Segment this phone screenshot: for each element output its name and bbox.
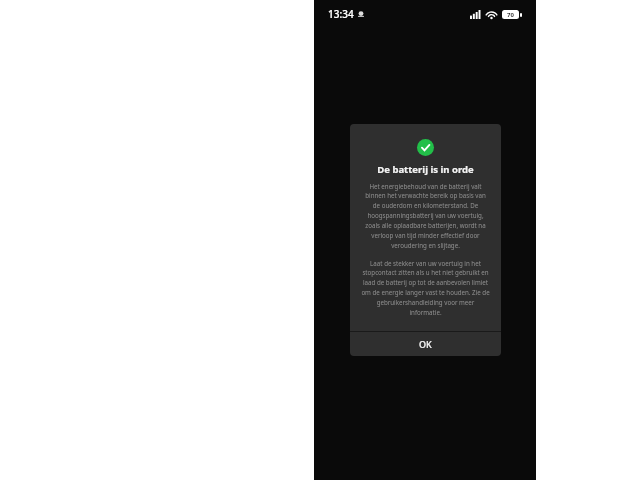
other: Battery healthy	[417, 139, 434, 156]
staticText: 70	[507, 11, 514, 19]
button[interactable]: OK	[350, 332, 501, 356]
staticText: OK	[419, 338, 432, 350]
staticText: Laat de stekker van uw voertuig in het s…	[361, 259, 490, 317]
staticText: De batterij is in orde	[377, 163, 474, 176]
staticText: 13:34	[328, 7, 354, 21]
staticText: Het energiebehoud van de batterij valt b…	[361, 182, 490, 250]
